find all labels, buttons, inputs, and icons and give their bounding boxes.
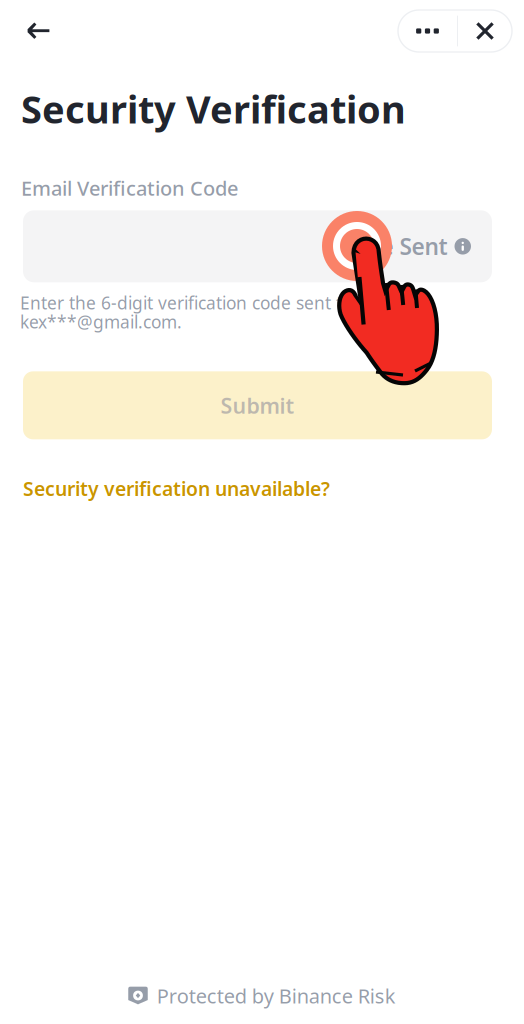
button[interactable]: Submit bbox=[23, 371, 492, 439]
staticText: Protected by Binance Risk bbox=[157, 982, 396, 1009]
staticText: Email Verification Code bbox=[21, 175, 238, 201]
staticText: Code Sent bbox=[338, 231, 447, 261]
staticText: kex***@gmail.com. bbox=[20, 310, 182, 333]
button[interactable]: Security verification unavailable? bbox=[0, 469, 346, 508]
button[interactable]: More options bbox=[398, 10, 457, 52]
button[interactable]: Code Sent bbox=[338, 221, 471, 271]
staticText: Security Verification bbox=[21, 83, 406, 135]
staticText: Security verification unavailable? bbox=[23, 475, 330, 502]
button[interactable]: Close bbox=[458, 10, 512, 52]
staticText: Submit bbox=[220, 391, 294, 419]
staticText: Enter the 6-digit verification code sent… bbox=[20, 291, 352, 314]
button[interactable]: Back bbox=[0, 9, 78, 53]
